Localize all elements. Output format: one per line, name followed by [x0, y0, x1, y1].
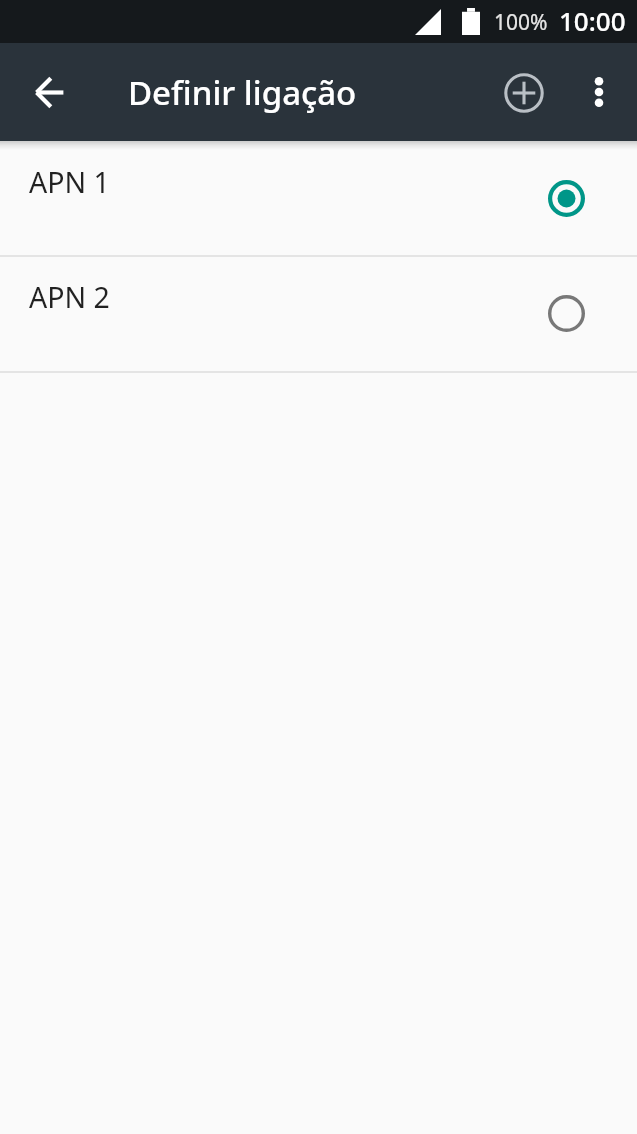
button[interactable]: Back [20, 63, 78, 121]
button[interactable]: Add APN [493, 62, 555, 124]
other: Battery full [462, 8, 480, 35]
other: Signal strength [415, 9, 441, 35]
staticText: 100% [494, 8, 548, 37]
staticText: Definir ligação [128, 70, 357, 115]
button[interactable]: APN 2 [0, 257, 637, 371]
staticText: APN 2 [29, 278, 110, 317]
staticText: APN 1 [29, 163, 110, 202]
staticText: 10:00 [559, 3, 626, 38]
button[interactable]: More options [571, 64, 627, 120]
button[interactable]: APN 1 [0, 141, 637, 255]
